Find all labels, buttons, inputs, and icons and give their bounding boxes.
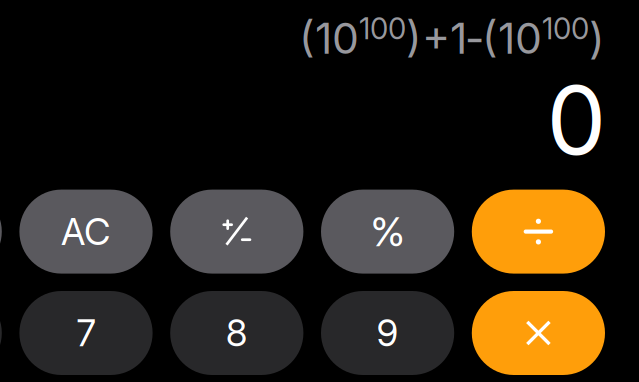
button[interactable]: Nine	[321, 291, 454, 375]
staticText: 9	[377, 311, 399, 355]
button[interactable]: Percent	[321, 190, 454, 274]
staticText: %	[371, 207, 405, 256]
button[interactable]: Eight	[170, 291, 303, 375]
button[interactable]: All clear	[19, 190, 153, 274]
staticText: 7	[76, 311, 95, 355]
staticText: 0	[546, 63, 606, 177]
staticText: AC	[61, 209, 111, 254]
button[interactable]: Memory recall	[0, 190, 2, 274]
button[interactable]: Multiply	[472, 291, 605, 375]
button[interactable]: Ten to the power of x	[0, 291, 2, 375]
button[interactable]: Plus minus	[170, 190, 303, 274]
button[interactable]: Seven	[19, 291, 153, 375]
button[interactable]: Divide	[472, 190, 605, 274]
staticText: 8	[226, 311, 248, 355]
staticText: (10100)+1‐(10100)	[299, 11, 605, 63]
